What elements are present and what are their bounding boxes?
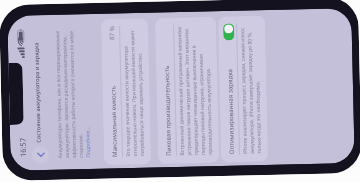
staticText: Это текущее значение емкости аккумулятор… [122,25,146,157]
staticText: Пиковая производительность [162,65,172,156]
staticText: 16:57 [18,137,28,157]
staticText: iPhone анализирует процесс зарядки, сниж… [239,23,263,154]
staticText: Оптимизированная зарядка [225,68,235,154]
button[interactable]: Optimized charging toggle [223,23,234,40]
staticText: Встроенный динамический программный меха… [176,24,214,156]
button[interactable]: Оптимизированная зарядка [218,16,268,163]
staticText: Состояние аккумулятора и зарядка [32,42,43,143]
button[interactable]: Back [32,146,49,164]
staticText: 87 % [107,26,115,40]
button[interactable]: Максимальная емкость [101,18,151,165]
button[interactable]: Пиковая производительность [155,17,219,164]
staticText: Максимальная емкость [108,85,118,157]
button[interactable]: Подробнее… [84,125,92,158]
staticText: Аккумуляторы телефона, как и все перезар… [54,26,85,158]
